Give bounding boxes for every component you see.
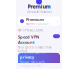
staticText: Browse safely with encrypted traffic xyxy=(20,61,45,68)
staticText: MY VPN ACCOUNT xyxy=(18,29,43,32)
button[interactable]: VPN toggle xyxy=(53,34,60,38)
staticText: Premium xyxy=(27,3,50,10)
staticText: Your speed is faster than before xyxy=(18,46,52,53)
staticText: Unlock all features xyxy=(26,10,51,14)
button[interactable]: Premium xyxy=(18,17,60,26)
staticText: Speed VPN Account xyxy=(18,34,39,45)
staticText: › xyxy=(57,18,58,24)
staticText: Premium xyxy=(26,17,44,22)
staticText: Protect your privacy xyxy=(20,49,46,60)
staticText: Expires 12/2025 xyxy=(26,22,49,25)
